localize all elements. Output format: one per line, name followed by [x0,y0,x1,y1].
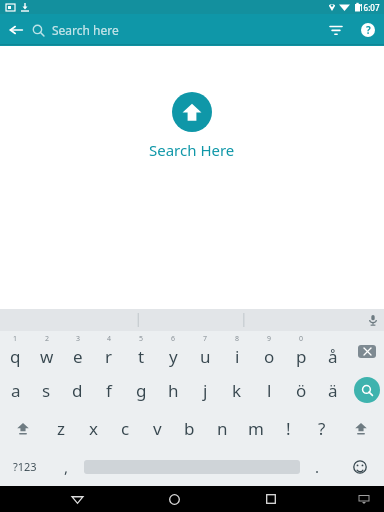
staticText: j [203,379,208,402]
button[interactable]: z [45,409,77,447]
staticText: ?123 [13,459,37,474]
staticText: p [296,345,307,368]
button[interactable]: m [239,409,272,447]
staticText: o [264,345,275,368]
staticText: b [184,417,195,440]
button[interactable]: 3 [62,331,93,371]
button[interactable]: ?123 [0,447,49,486]
button[interactable]: , [49,447,84,486]
button[interactable]: Emoji [335,447,384,486]
button[interactable]: Help [352,14,384,46]
staticText: k [232,379,242,402]
button[interactable]: Voice input [362,309,384,331]
button[interactable]: f [93,371,125,409]
staticText: ? [366,23,371,37]
button[interactable]: 1 [0,331,31,371]
button[interactable]: ? [305,409,338,447]
staticText: 9 [267,334,272,344]
staticText: 3 [76,334,81,344]
staticText: t [138,345,145,368]
staticText: c [121,417,130,440]
button[interactable]: Space [84,447,300,486]
staticText: Search here [52,22,119,38]
staticText: ? [318,417,326,440]
staticText: q [10,345,21,368]
staticText: l [267,379,272,402]
staticText: w [40,345,54,368]
button[interactable]: x [77,409,109,447]
button[interactable]: ä [317,371,349,409]
button[interactable]: Back [0,14,32,46]
staticText: e [73,345,83,368]
other: Search Here [172,92,212,132]
staticText: ä [328,379,338,402]
button[interactable]: Search Here [149,92,235,160]
button[interactable]: Search here [32,14,320,46]
staticText: d [72,379,83,402]
button[interactable]: 0 [285,331,317,371]
staticText: . [315,457,320,477]
button[interactable]: 8 [221,331,253,371]
staticText: Search Here [149,140,235,160]
staticText: å [328,345,338,368]
button[interactable]: h [157,371,189,409]
button[interactable]: 9 [253,331,285,371]
staticText: 5 [139,334,144,344]
button[interactable]: d [62,371,93,409]
button[interactable]: Shift [0,409,45,447]
staticText: 6 [171,334,176,344]
staticText: 0 [299,334,304,344]
button[interactable]: j [189,371,221,409]
staticText: 16:07 [359,2,380,13]
button[interactable]: Home [154,486,194,512]
button[interactable]: Shift [338,409,384,447]
staticText: n [217,417,228,440]
button[interactable]: å [317,331,349,371]
button[interactable]: 5 [125,331,157,371]
staticText: a [11,379,21,402]
button[interactable]: ö [285,371,317,409]
button[interactable]: Back [57,486,97,512]
staticText: ö [296,379,307,402]
button[interactable]: v [141,409,173,447]
staticText: y [169,345,178,368]
button[interactable]: 4 [93,331,125,371]
staticText: 2 [45,334,50,344]
staticText: u [200,345,211,368]
button[interactable]: Hide keyboard [348,486,380,512]
staticText: f [106,379,112,402]
staticText: 4 [107,334,112,344]
staticText: x [89,417,98,440]
staticText: , [64,457,69,477]
button[interactable]: n [206,409,239,447]
button[interactable]: Search [349,371,384,409]
button[interactable]: b [173,409,206,447]
button[interactable]: Filter [320,14,352,46]
staticText: g [136,379,147,402]
staticText: 8 [235,334,240,344]
button[interactable]: a [0,371,31,409]
staticText: v [153,417,162,440]
button[interactable]: Backspace [349,331,384,371]
staticText: i [235,345,240,368]
button[interactable]: 2 [31,331,62,371]
staticText: h [168,379,179,402]
button[interactable]: 7 [189,331,221,371]
staticText: 1 [13,334,18,344]
staticText: ! [286,417,291,440]
staticText: 7 [203,334,208,344]
button[interactable]: 6 [157,331,189,371]
staticText: r [105,345,113,368]
button[interactable]: l [253,371,285,409]
button[interactable]: g [125,371,157,409]
button[interactable]: Recents [251,486,291,512]
staticText: m [248,417,264,440]
button[interactable]: . [300,447,335,486]
staticText: s [42,379,51,402]
button[interactable]: ! [272,409,305,447]
staticText: z [57,417,65,440]
button[interactable]: s [31,371,62,409]
button[interactable]: c [109,409,141,447]
button[interactable]: k [221,371,253,409]
